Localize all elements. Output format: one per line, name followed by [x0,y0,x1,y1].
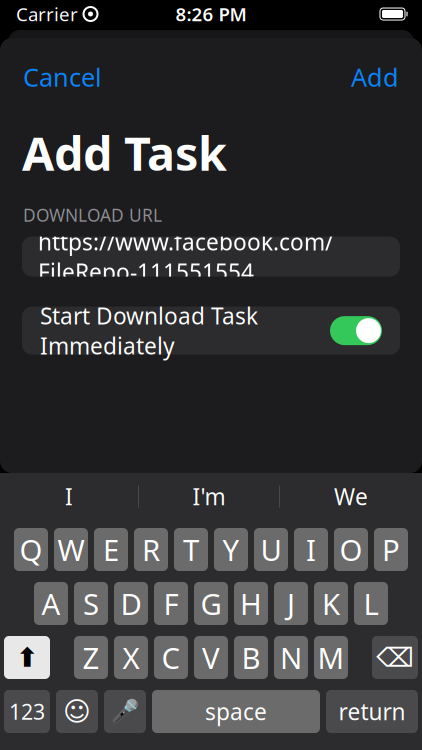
staticText: 123 [9,697,45,726]
button[interactable]: D [114,582,148,625]
staticText: I'm [192,481,225,511]
staticText: I [65,481,73,511]
button[interactable]: W [54,528,88,571]
button[interactable]: Emoji [56,690,98,733]
staticText: T [183,530,199,569]
button[interactable]: return [326,690,418,733]
staticText: H [240,584,262,623]
staticText: L [363,584,378,623]
staticText: space [205,696,267,726]
staticText: ☺ [63,696,91,727]
staticText: A [41,584,60,623]
staticText: R [142,530,160,569]
staticText: P [382,530,400,569]
staticText: G [200,584,221,623]
staticText: I [306,530,316,569]
staticText: Q [19,530,42,569]
staticText: J [287,584,295,623]
staticText: D [120,584,141,623]
button[interactable]: I [294,528,328,571]
staticText: DOWNLOAD URL [23,204,162,227]
button[interactable]: V [194,636,228,679]
button[interactable]: I'm [139,474,279,518]
staticText: return [338,696,405,726]
button[interactable]: Z [74,636,108,679]
button[interactable]: I [0,474,138,518]
staticText: K [322,584,340,623]
button[interactable]: Cancel [19,52,106,102]
staticText: Y [222,530,239,569]
staticText: Cancel [23,60,102,94]
staticText: We [334,481,368,511]
button[interactable]: Add [347,52,403,102]
staticText: F [163,584,178,623]
button[interactable]: C [154,636,188,679]
button[interactable]: We [280,474,422,518]
button[interactable]: X [114,636,148,679]
button[interactable]: Shift [4,636,50,679]
staticText: 8:26 PM [175,2,246,26]
button[interactable]: H [234,582,268,625]
staticText: Add Task [22,122,227,184]
staticText: Z [82,638,99,677]
button[interactable]: N [274,636,308,679]
button[interactable]: Delete [372,636,418,679]
button[interactable]: P [374,528,408,571]
button[interactable]: K [314,582,348,625]
button[interactable]: J [274,582,308,625]
button[interactable]: O [334,528,368,571]
button[interactable]: A [34,582,68,625]
button[interactable]: R [134,528,168,571]
button[interactable]: Q [14,528,48,571]
staticText: ⌫ [376,642,414,673]
button[interactable]: B [234,636,268,679]
staticText: W [57,530,84,569]
staticText: M [317,638,344,677]
button[interactable]: Dictation [104,690,146,733]
staticText: N [280,638,302,677]
button[interactable]: S [74,582,108,625]
staticText: Add [351,60,399,94]
staticText: E [103,530,119,569]
button[interactable]: space [152,690,320,733]
staticText: U [260,530,281,569]
button[interactable]: U [254,528,288,571]
staticText: X [122,638,139,677]
button[interactable]: T [174,528,208,571]
staticText: S [83,584,99,623]
button[interactable]: M [314,636,348,679]
button[interactable]: 123 [4,690,50,733]
staticText: ⬆ [16,642,38,673]
button[interactable]: Start Download Task Immediately [22,307,400,355]
button[interactable]: L [354,582,388,625]
staticText: V [202,638,220,677]
button[interactable]: E [94,528,128,571]
staticText: C [161,638,180,677]
staticText: Start Download Task Immediately [40,300,258,361]
button[interactable]: F [154,582,188,625]
staticText: O [339,530,362,569]
button[interactable]: G [194,582,228,625]
staticText: 🎤 [111,699,139,724]
staticText: https://www.facebook.com/FileRepo-111551… [38,226,333,287]
staticText: B [241,638,260,677]
staticText: Carrier [16,2,78,26]
button[interactable]: Y [214,528,248,571]
